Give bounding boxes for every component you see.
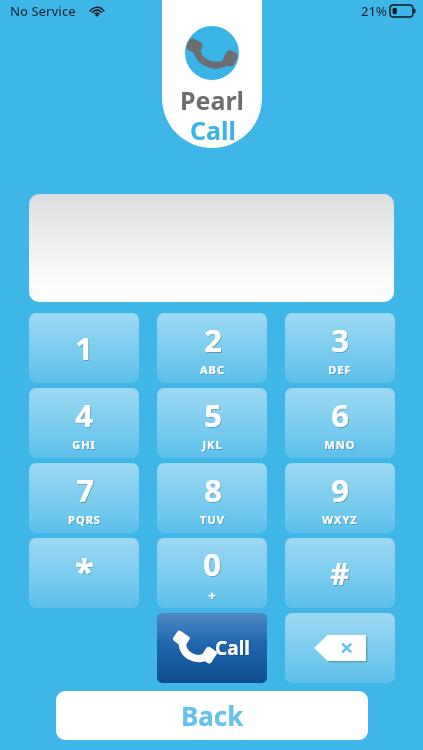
staticText: GHI: [72, 437, 96, 452]
staticText: No Service: [10, 2, 76, 20]
staticText: +: [209, 587, 218, 605]
staticText: WXYZ: [323, 513, 359, 528]
staticText: 7: [76, 469, 94, 511]
staticText: MNO: [325, 438, 357, 453]
button[interactable]: 3: [285, 313, 395, 383]
staticText: JKL: [203, 438, 224, 453]
staticText: 3: [331, 319, 349, 361]
staticText: 4: [75, 394, 93, 436]
staticText: 1: [75, 327, 93, 369]
button[interactable]: Backspace: [285, 613, 395, 683]
staticText: WXYZ: [322, 512, 358, 527]
staticText: 2: [205, 320, 223, 362]
staticText: PQRS: [69, 513, 102, 528]
button[interactable]: 1: [29, 313, 139, 383]
staticText: 3: [332, 320, 350, 362]
staticText: 0: [204, 544, 222, 586]
button[interactable]: 2: [157, 313, 267, 383]
button[interactable]: 5: [157, 388, 267, 458]
staticText: #: [330, 553, 350, 594]
staticText: 2: [204, 319, 222, 361]
staticText: *: [76, 549, 95, 595]
staticText: +: [208, 586, 217, 604]
staticText: Call: [215, 635, 250, 661]
staticText: TUV: [200, 512, 225, 527]
button[interactable]: 0: [157, 538, 267, 608]
staticText: 21%: [361, 2, 387, 20]
button[interactable]: [29, 194, 394, 302]
staticText: Back: [181, 698, 244, 733]
staticText: 5: [204, 394, 222, 436]
staticText: *: [75, 548, 94, 594]
staticText: TUV: [201, 513, 226, 528]
staticText: Pearl: [180, 83, 245, 117]
button[interactable]: *: [29, 538, 139, 608]
staticText: 7: [77, 470, 95, 512]
staticText: MNO: [324, 437, 356, 452]
button[interactable]: 7: [29, 463, 139, 533]
staticText: 0: [203, 543, 221, 585]
staticText: PQRS: [68, 512, 101, 527]
staticText: Call: [216, 636, 251, 662]
staticText: ABC: [200, 362, 225, 377]
staticText: JKL: [202, 437, 223, 452]
staticText: 8: [204, 469, 222, 511]
staticText: GHI: [73, 438, 97, 453]
button[interactable]: 4: [29, 388, 139, 458]
staticText: #: [331, 554, 351, 595]
staticText: 8: [205, 470, 223, 512]
staticText: 9: [331, 469, 349, 511]
button[interactable]: #: [285, 538, 395, 608]
button[interactable]: Call: [157, 613, 267, 683]
button[interactable]: 8: [157, 463, 267, 533]
staticText: ABC: [201, 363, 226, 378]
button[interactable]: Back: [56, 691, 368, 740]
staticText: 4: [76, 395, 94, 437]
staticText: 9: [332, 470, 350, 512]
button[interactable]: 6: [285, 388, 395, 458]
staticText: 6: [331, 394, 349, 436]
staticText: DEF: [329, 363, 353, 378]
staticText: Call: [190, 113, 236, 147]
staticText: 1: [76, 328, 94, 370]
button[interactable]: 9: [285, 463, 395, 533]
staticText: DEF: [328, 362, 352, 377]
staticText: 5: [205, 395, 223, 437]
staticText: 6: [332, 395, 350, 437]
